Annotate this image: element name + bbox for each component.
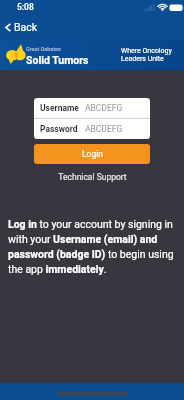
staticText: Great Debates	[26, 46, 61, 52]
button[interactable]: Password	[34, 119, 150, 139]
staticText: ABCDEFG	[85, 124, 123, 134]
staticText: Log in to your account by signing in wit…	[8, 218, 176, 276]
staticText: Back	[14, 21, 38, 33]
staticText: Password	[40, 124, 78, 134]
button[interactable]: Username	[34, 98, 150, 118]
staticText: Where Oncology	[121, 47, 172, 55]
staticText: Technical Support	[58, 172, 127, 182]
staticText: Leaders Unite	[121, 55, 164, 63]
button[interactable]: Technical Support	[0, 172, 184, 182]
button[interactable]: Back	[2, 18, 41, 36]
staticText: Username	[40, 103, 79, 113]
staticText: Login	[82, 149, 103, 159]
staticText: ABCDEFG	[85, 103, 123, 113]
staticText: Solid Tumors	[26, 54, 89, 66]
staticText: 5:08	[17, 2, 34, 12]
button[interactable]: Login	[34, 144, 150, 164]
